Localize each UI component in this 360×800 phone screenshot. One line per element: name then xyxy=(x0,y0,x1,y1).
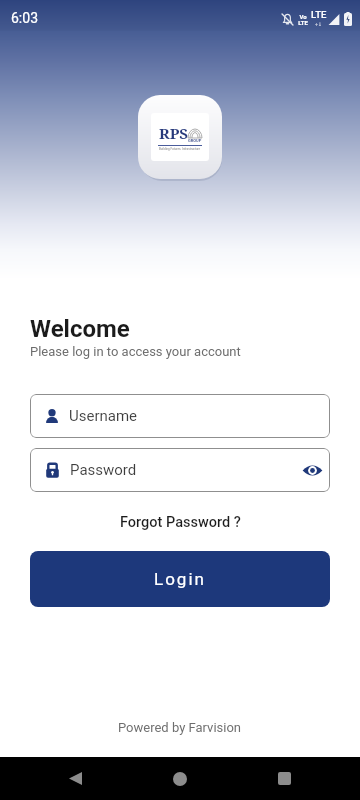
staticText: Powered by Farvision xyxy=(118,720,242,735)
staticText: LTE xyxy=(311,9,327,20)
staticText: Login xyxy=(154,569,206,589)
button[interactable] xyxy=(302,460,323,481)
staticText: Vo LTE xyxy=(298,13,308,27)
button[interactable] xyxy=(69,772,82,785)
staticText: Please log in to access your account xyxy=(30,344,241,359)
button[interactable]: Username xyxy=(30,394,330,438)
button[interactable] xyxy=(278,772,291,785)
staticText: Password xyxy=(70,461,302,479)
staticText: 6:03 xyxy=(11,10,38,26)
staticText: Welcome xyxy=(30,315,130,343)
button[interactable]: Forgot Password ? xyxy=(120,514,241,531)
button[interactable]: Password xyxy=(30,448,330,492)
staticText: RPS xyxy=(159,123,188,143)
button[interactable] xyxy=(173,772,187,786)
staticText: Building Futures. Infrastructure xyxy=(159,147,201,151)
staticText: Username xyxy=(69,407,138,425)
button[interactable]: Login xyxy=(30,551,330,607)
staticText: GROUP xyxy=(188,138,202,143)
staticText: +↓ xyxy=(315,21,323,27)
